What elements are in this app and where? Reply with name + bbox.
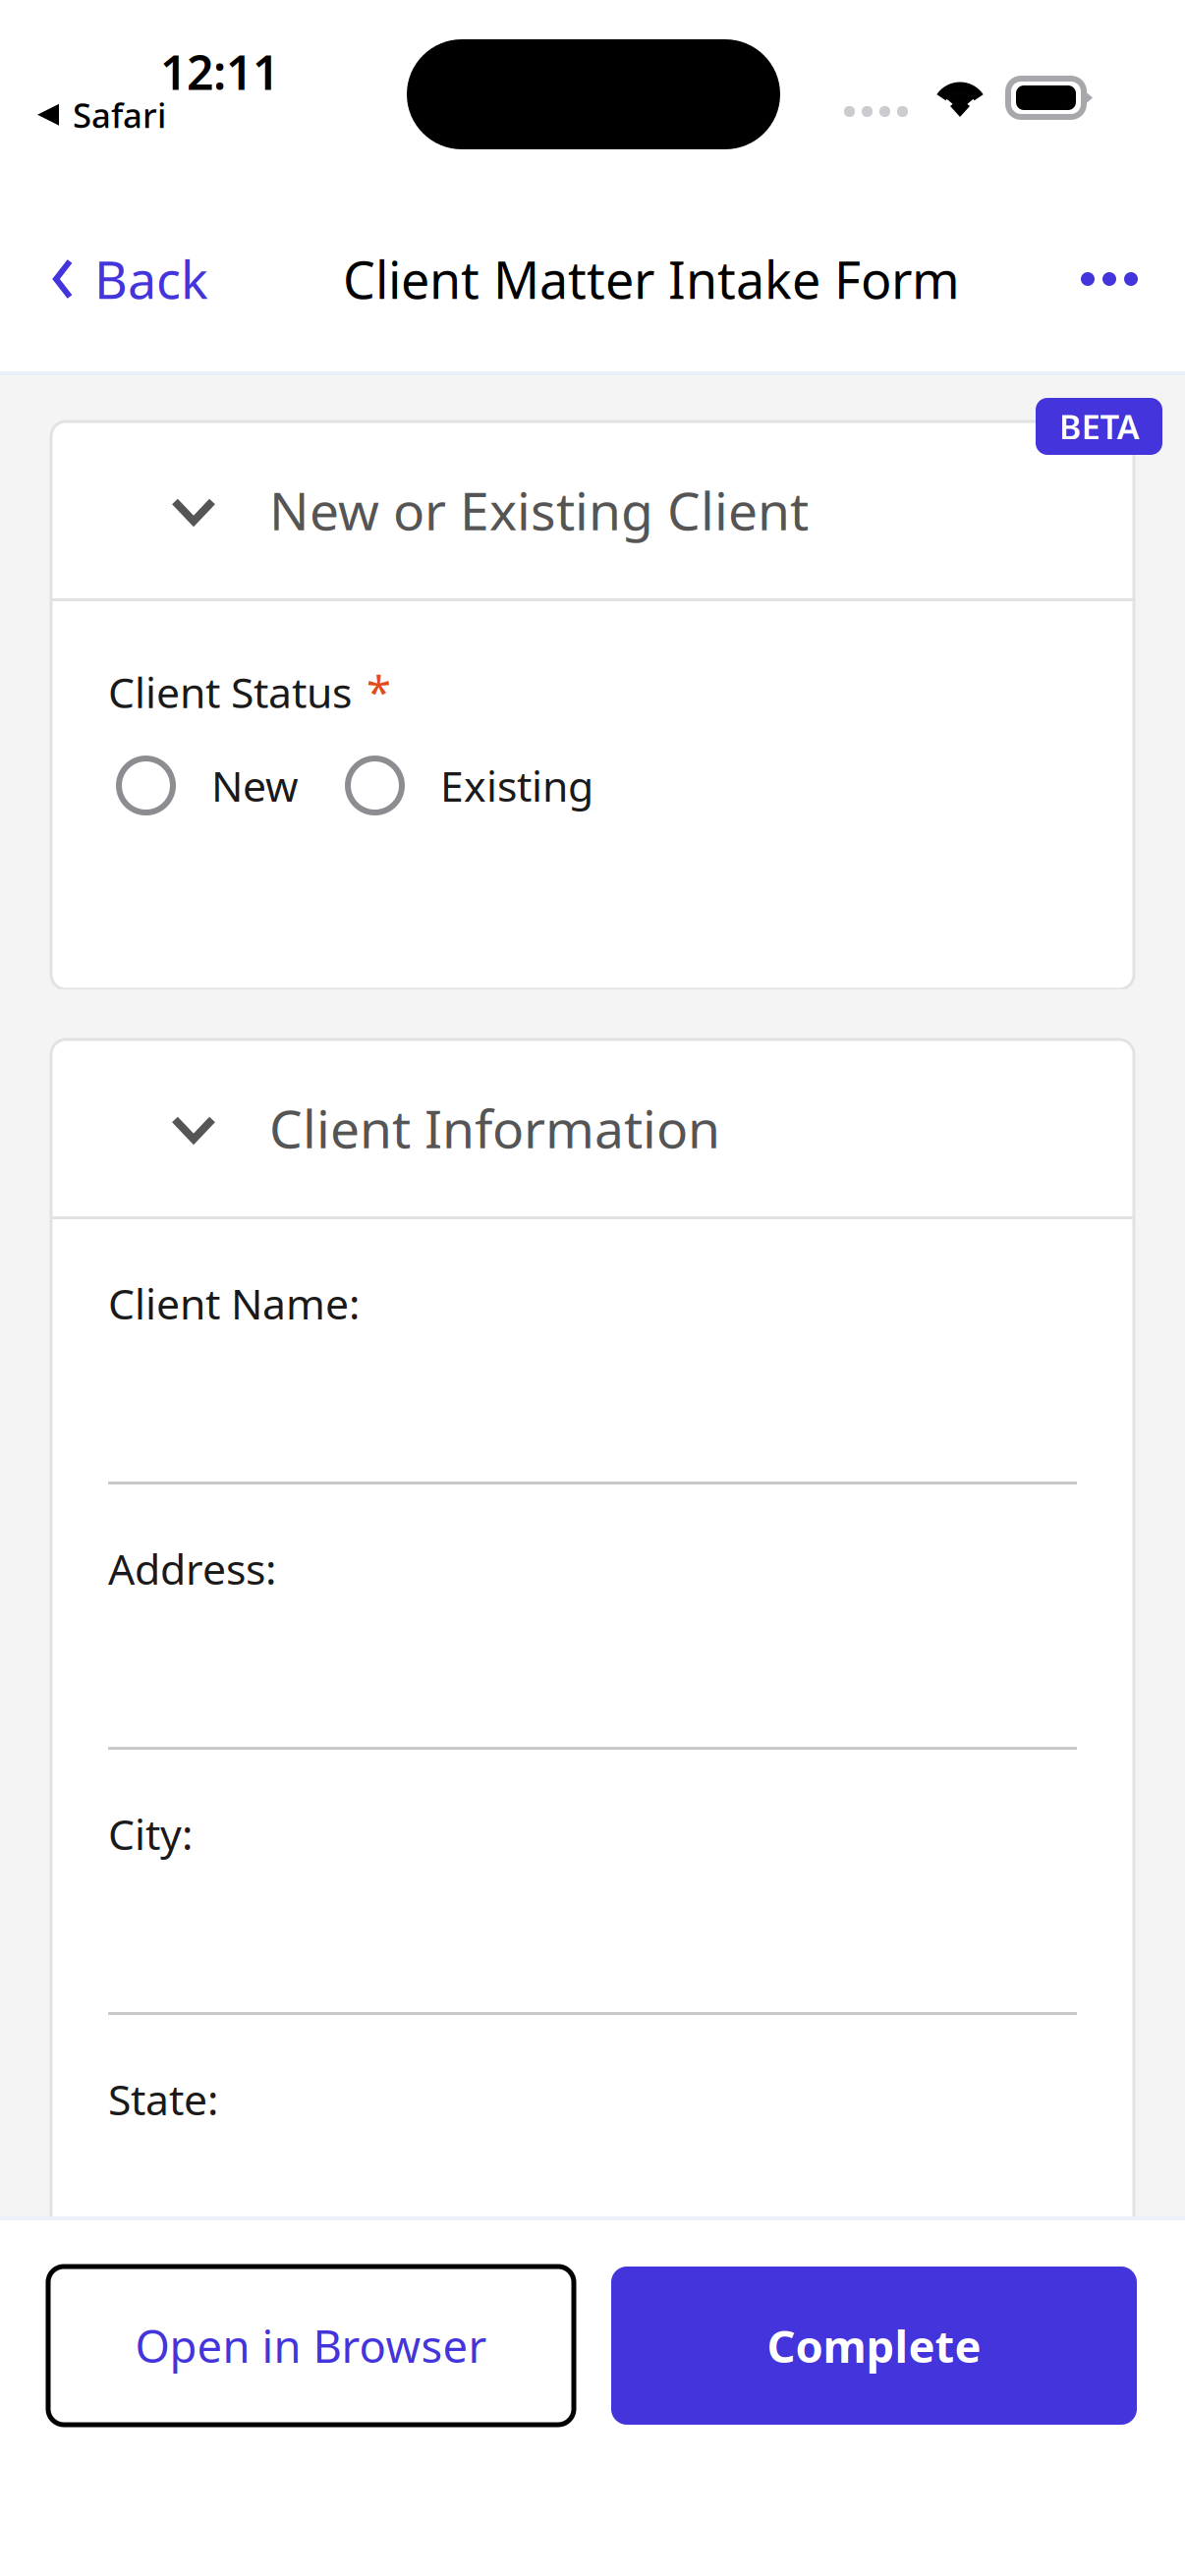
button[interactable]: Client Information — [51, 1039, 1134, 1216]
button[interactable]: Back — [0, 220, 242, 339]
staticText: Back — [94, 245, 208, 313]
staticText: Client Matter Intake Form — [343, 245, 960, 313]
staticText: Client Status — [108, 664, 352, 720]
staticText: Client Information — [269, 1093, 720, 1163]
staticText: New — [211, 758, 299, 813]
staticText: State: — [108, 2071, 218, 2127]
staticText: New or Existing Client — [269, 475, 809, 545]
staticText: Existing — [440, 758, 593, 813]
button[interactable]: Existing — [337, 758, 593, 813]
staticText: BETA — [1059, 404, 1139, 449]
button[interactable]: Open in Browser — [48, 2267, 574, 2425]
button[interactable]: Complete — [611, 2267, 1137, 2425]
staticText: * — [367, 662, 391, 721]
staticText: Open in Browser — [135, 2316, 487, 2375]
staticText: Address: — [108, 1540, 276, 1596]
staticText: Complete — [767, 2316, 981, 2375]
staticText: Client Name: — [108, 1275, 360, 1331]
staticText: City: — [108, 1806, 193, 1861]
staticText: Safari — [73, 92, 166, 137]
staticText: 12:11 — [160, 40, 279, 103]
button[interactable]: New or Existing Client — [51, 421, 1134, 598]
button[interactable]: More options — [1038, 229, 1185, 329]
button[interactable]: New — [108, 758, 299, 813]
